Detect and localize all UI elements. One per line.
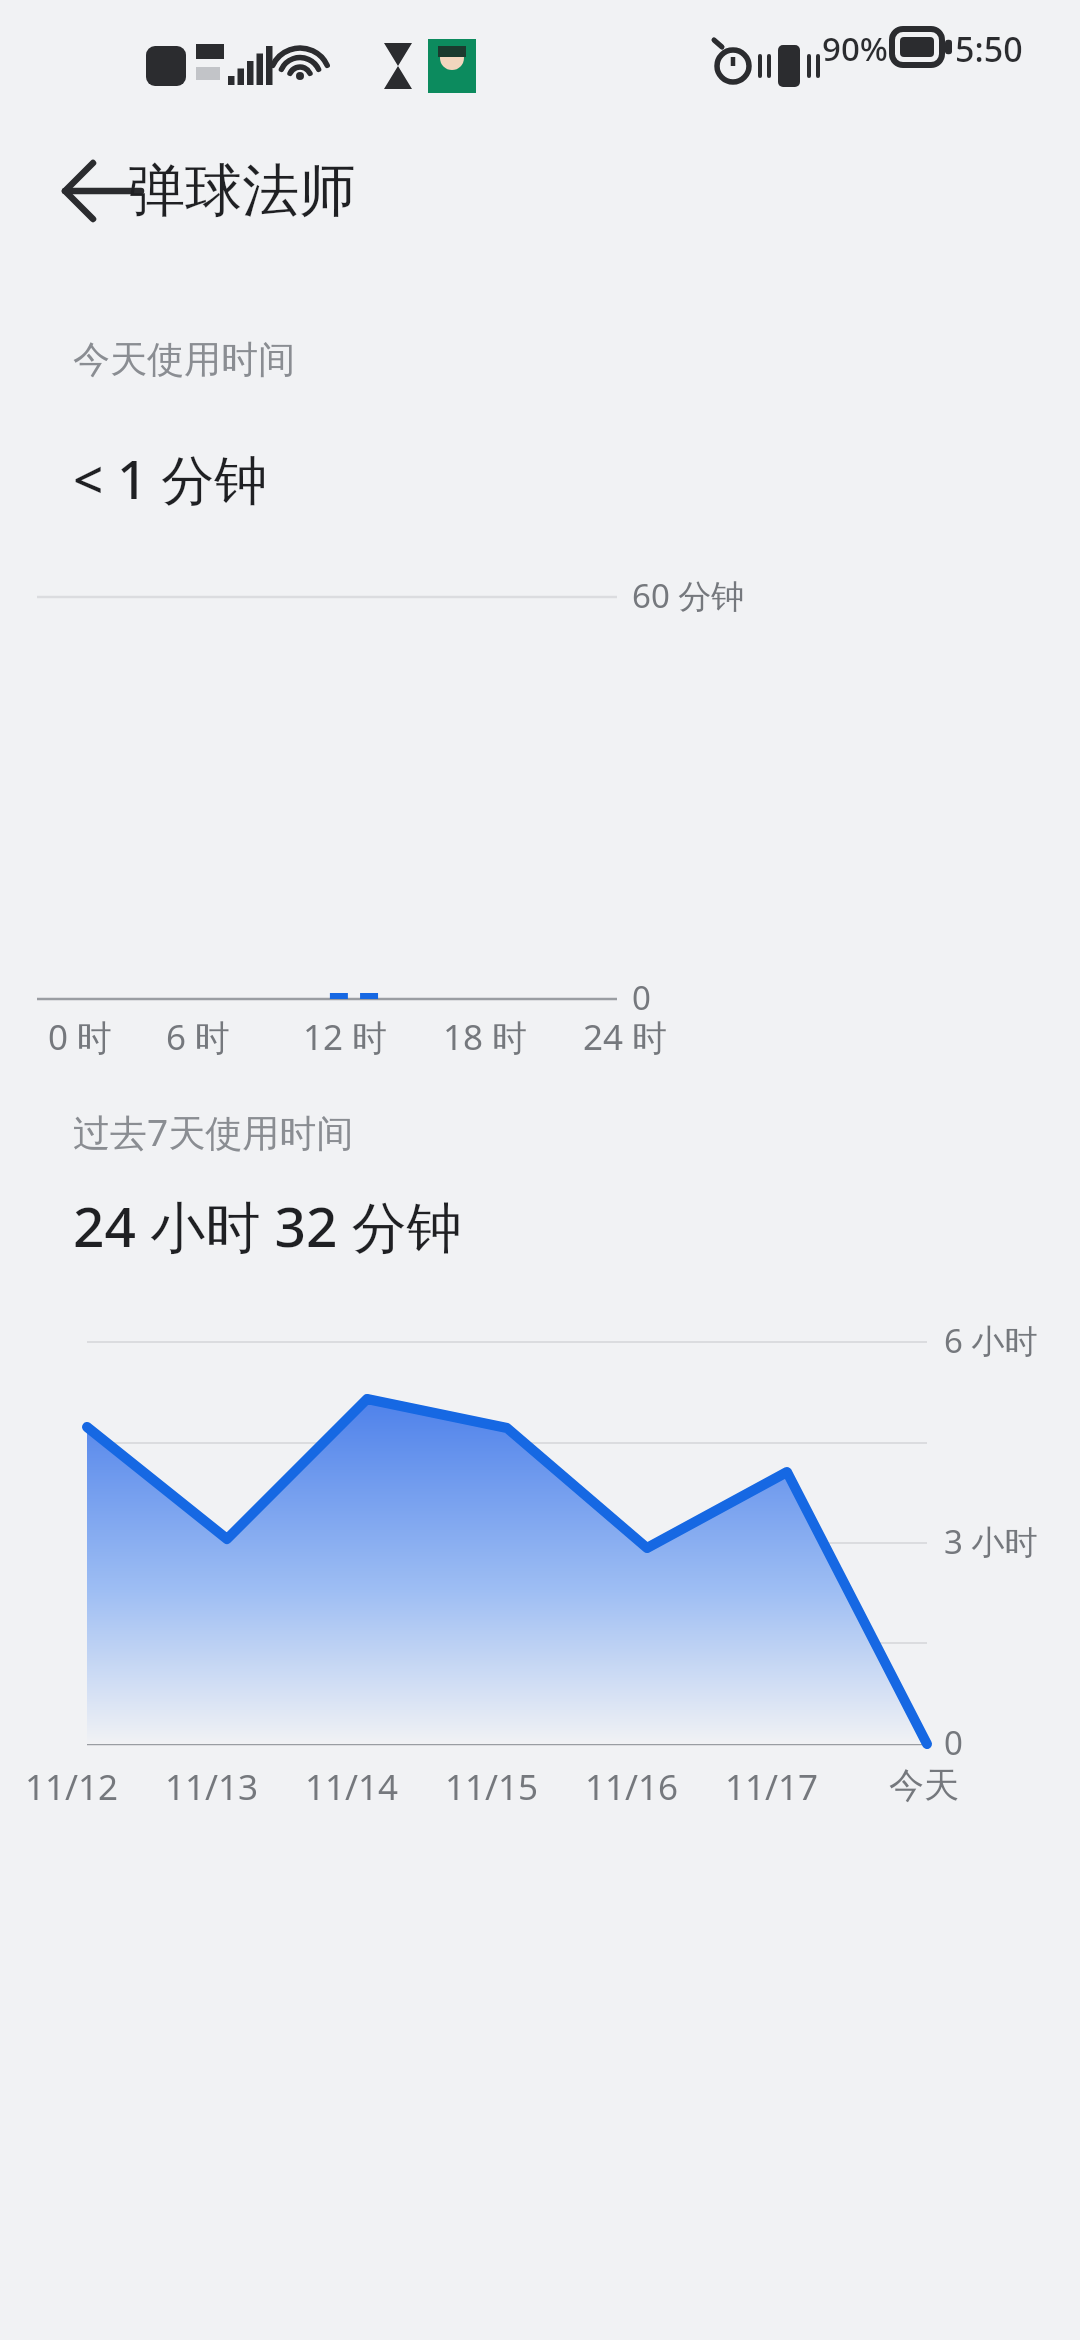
staticText: 11/16 (585, 1763, 679, 1811)
staticText: 0 时 (48, 1013, 113, 1061)
staticText: 90% (822, 26, 888, 71)
staticText: 今天使用时间 (73, 336, 295, 383)
staticText: 过去7天使用时间 (73, 1106, 354, 1157)
staticText: 0 (944, 1720, 963, 1765)
staticText: < 1 分钟 (73, 442, 268, 514)
staticText: 24 时 (583, 1013, 668, 1061)
staticText: 5:50 (955, 26, 1023, 72)
staticText: 60 分钟 (632, 573, 745, 618)
staticText: 0 (632, 975, 651, 1020)
staticText: 弹球法师 (128, 155, 356, 227)
staticText: 24 小时 32 分钟 (73, 1188, 462, 1263)
staticText: 12 时 (303, 1013, 388, 1061)
button[interactable]: 返回 (48, 148, 158, 234)
staticText: 11/13 (165, 1763, 259, 1811)
staticText: 11/14 (305, 1763, 399, 1811)
staticText: 今天 (889, 1763, 959, 1807)
staticText: 11/15 (445, 1763, 539, 1811)
staticText: 11/12 (25, 1763, 119, 1811)
staticText: 6 时 (166, 1013, 231, 1061)
staticText: 11/17 (725, 1763, 819, 1811)
staticText: 18 时 (443, 1013, 528, 1061)
staticText: 6 小时 (944, 1318, 1038, 1363)
staticText: 3 小时 (944, 1519, 1038, 1564)
